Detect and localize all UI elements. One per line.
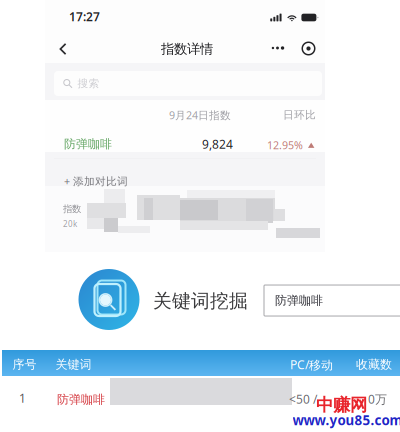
staticText: 防弹咖啡 [275,293,323,308]
staticText: 1 [19,390,26,406]
button[interactable]: 搜索 [54,71,322,96]
button[interactable]: More options [269,41,287,55]
staticText: 防弹咖啡 [57,392,105,407]
staticText: 指数 [63,203,81,215]
staticText: 收藏数 [356,357,392,372]
staticText: 序号 [12,357,36,372]
staticText: 9,824 [202,136,233,152]
staticText: <50 / [289,391,317,407]
staticText: 关键词挖掘 [153,289,248,312]
staticText: 关键词 [55,357,91,372]
staticText: 0万 [368,391,387,407]
staticText: 防弹咖啡 [64,137,112,151]
button[interactable]: 防弹咖啡 [264,285,400,316]
staticText: + 添加对比词 [64,174,128,188]
staticText: 9月24日指数 [169,108,231,122]
staticText: PC/移动 [290,356,333,372]
staticText: 17:27 [69,8,100,24]
staticText: 指数详情 [161,41,213,57]
staticText: 中赚网 [316,394,367,416]
staticText: 日环比 [283,108,316,121]
button[interactable]: Locate [301,41,316,56]
button[interactable]: Back [52,38,74,60]
staticText: 20k [63,219,77,229]
staticText: www.you85.com [292,411,400,429]
staticText: 搜索 [77,77,99,90]
staticText: 12.95% [267,138,303,152]
